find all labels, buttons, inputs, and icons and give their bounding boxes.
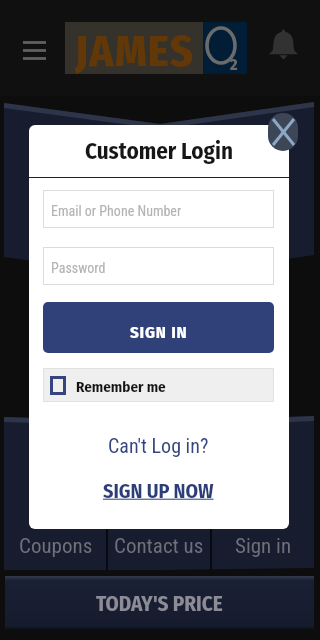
button[interactable]: SIGN IN [43, 302, 274, 353]
button[interactable]: JAMES O2 home [65, 22, 247, 74]
staticText: Sign in [235, 534, 292, 559]
staticText: Password [51, 260, 106, 276]
button[interactable]: Remember me [43, 368, 274, 402]
button[interactable]: SIGN UP NOW [43, 479, 274, 503]
staticText: TODAY'S PRICE [96, 591, 223, 616]
button[interactable]: Close dialog [268, 113, 298, 151]
staticText: Search Stations Now [58, 193, 263, 222]
staticText: SIGN IN [130, 322, 188, 342]
button[interactable]: Open navigation menu [17, 33, 51, 67]
staticText: 2 [230, 55, 238, 74]
staticText: Can't Log in? [108, 434, 209, 457]
staticText: Email or Phone Number [51, 203, 182, 219]
button[interactable]: Notifications [266, 28, 300, 62]
staticText: Coupons [19, 534, 93, 559]
button[interactable]: Contact us [108, 522, 210, 570]
staticText: Customer Login [85, 137, 234, 165]
button[interactable]: Can't Log in? [43, 434, 274, 457]
button[interactable]: TODAY'S PRICE [5, 576, 314, 630]
staticText: JAMES [75, 25, 195, 77]
button[interactable]: Email or Phone Number [43, 190, 274, 228]
staticText: SIGN UP NOW [103, 479, 214, 503]
staticText: Contact us [114, 534, 204, 559]
button[interactable]: Sign in [212, 522, 314, 570]
button[interactable]: Coupons [5, 522, 106, 570]
staticText: Remember me [76, 378, 166, 396]
button[interactable]: Password [43, 247, 274, 285]
